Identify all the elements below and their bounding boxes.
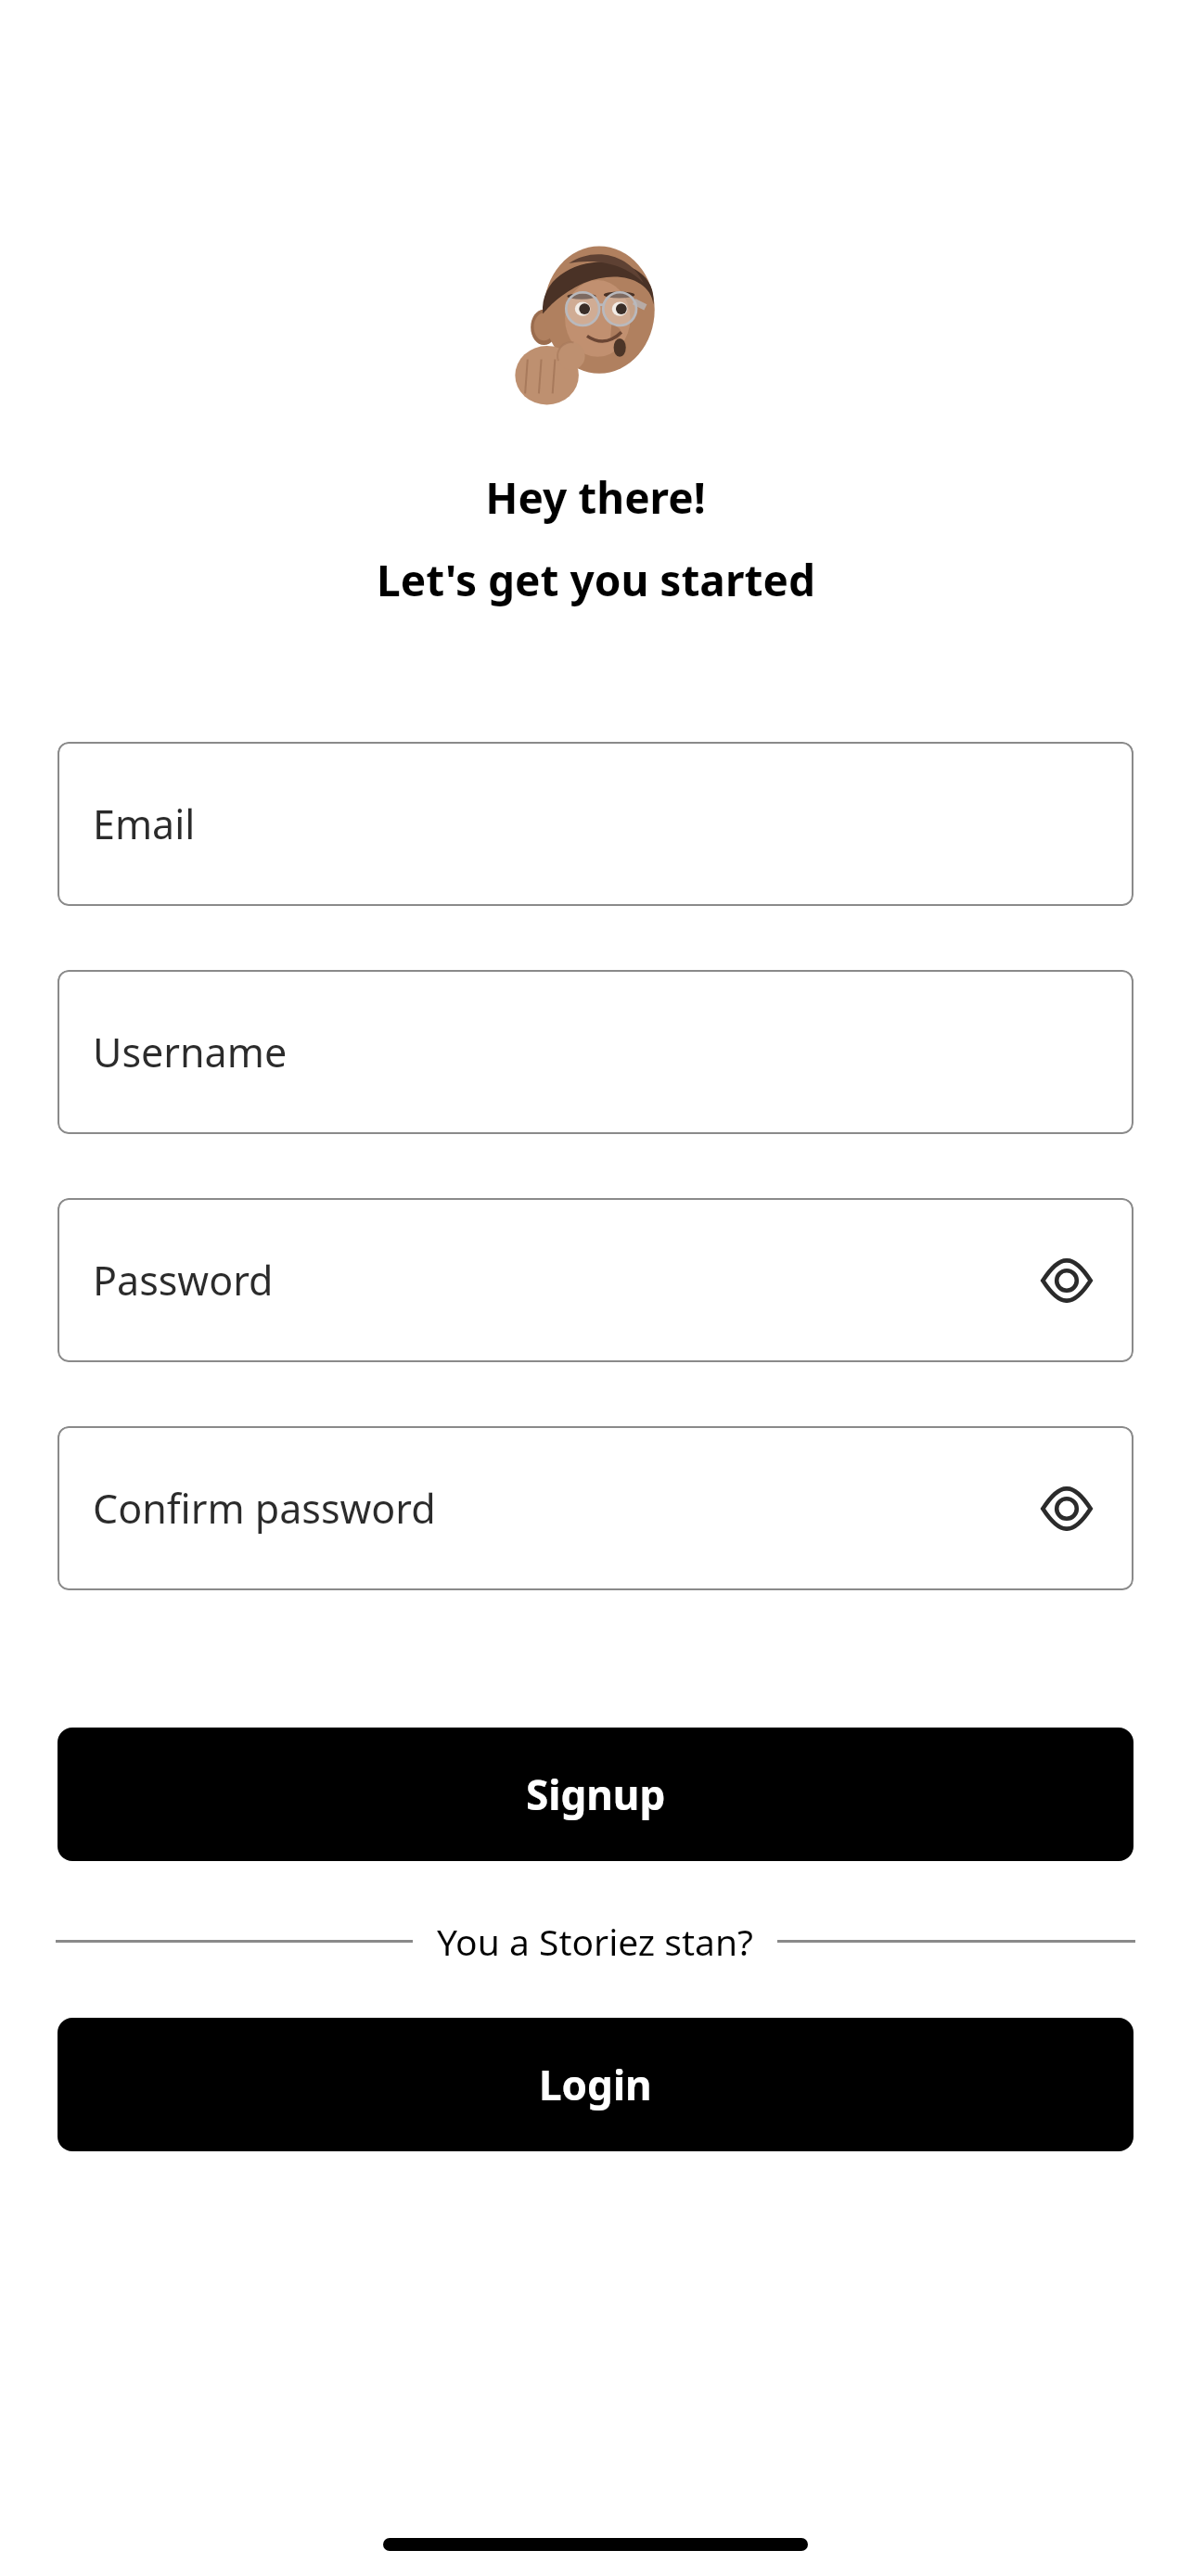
button[interactable]: Username (58, 970, 1133, 1134)
staticText: Email (93, 797, 196, 851)
staticText: Password (93, 1253, 274, 1307)
staticText: You a Storiez stan? (437, 1917, 753, 1966)
staticText: Hey there! (485, 468, 706, 527)
button[interactable]: Login (58, 2018, 1133, 2151)
button[interactable]: Password (58, 1198, 1133, 1362)
staticText: Confirm password (93, 1481, 436, 1536)
button[interactable]: Email (58, 742, 1133, 906)
staticText: Username (93, 1025, 288, 1079)
button[interactable]: Show password (1028, 1470, 1106, 1548)
button[interactable]: Signup (58, 1728, 1133, 1861)
staticText: Let's get you started (377, 551, 815, 609)
button[interactable]: Show password (1028, 1242, 1106, 1320)
button[interactable]: Confirm password (58, 1426, 1133, 1590)
staticText: Login (539, 2057, 652, 2112)
staticText: Signup (526, 1766, 666, 1822)
